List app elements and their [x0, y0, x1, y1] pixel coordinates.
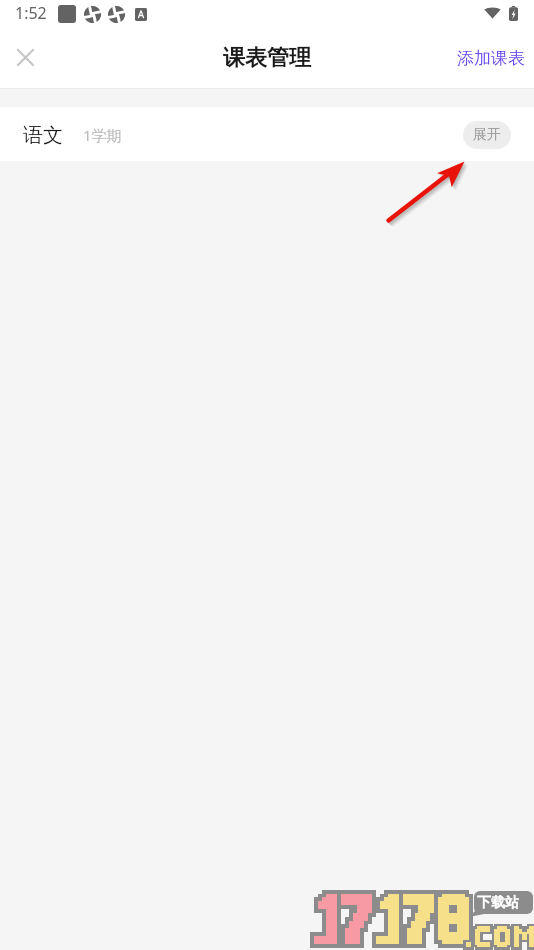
staticText: 1:52: [15, 2, 47, 24]
button[interactable]: Close: [0, 32, 50, 88]
staticText: 添加课表: [457, 48, 525, 69]
button[interactable]: 添加课表: [443, 38, 534, 79]
staticText: 展开: [473, 126, 501, 144]
button[interactable]: 展开: [463, 121, 511, 149]
staticText: 语文: [23, 123, 63, 148]
staticText: 下载站: [477, 894, 519, 912]
staticText: 1学期: [83, 125, 122, 145]
staticText: 课表管理: [223, 44, 311, 72]
button[interactable]: 语文: [0, 107, 534, 161]
